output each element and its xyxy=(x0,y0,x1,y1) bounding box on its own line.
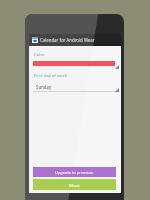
staticText: First day of week xyxy=(34,73,68,79)
button[interactable]: Calendar for Android Wear xyxy=(29,34,121,46)
staticText: Calendar for Android Wear xyxy=(40,37,95,43)
staticText: Sunday xyxy=(36,84,52,90)
button[interactable]: More xyxy=(33,179,116,190)
staticText: Color xyxy=(34,52,45,58)
button[interactable]: Upgrade to premium xyxy=(33,167,116,177)
staticText: More xyxy=(69,182,80,188)
staticText: Upgrade to premium xyxy=(55,170,94,175)
